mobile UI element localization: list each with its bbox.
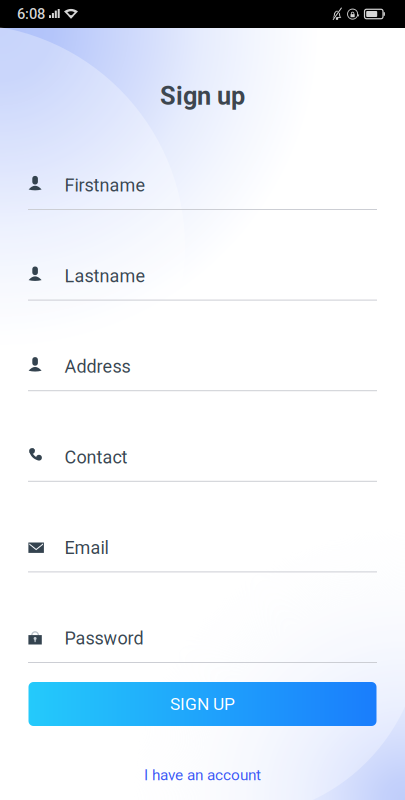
- staticText: Contact: [64, 447, 127, 468]
- staticText: Sign up: [160, 81, 245, 111]
- button[interactable]: Address: [28, 335, 377, 391]
- staticText: Password: [64, 628, 143, 649]
- staticText: Lastname: [64, 265, 145, 287]
- button[interactable]: Firstname: [28, 154, 377, 210]
- staticText: SIGN UP: [170, 694, 235, 714]
- staticText: Email: [64, 537, 108, 558]
- button[interactable]: Email: [28, 516, 377, 572]
- button[interactable]: Password: [28, 607, 377, 663]
- staticText: Address: [64, 356, 130, 377]
- staticText: I have an account: [144, 766, 261, 784]
- button[interactable]: Contact: [28, 426, 377, 482]
- staticText: 6:08: [17, 5, 45, 23]
- button[interactable]: I have an account: [102, 762, 302, 788]
- button[interactable]: SIGN UP: [28, 682, 376, 726]
- staticText: Firstname: [64, 175, 145, 196]
- button[interactable]: Lastname: [28, 245, 377, 301]
